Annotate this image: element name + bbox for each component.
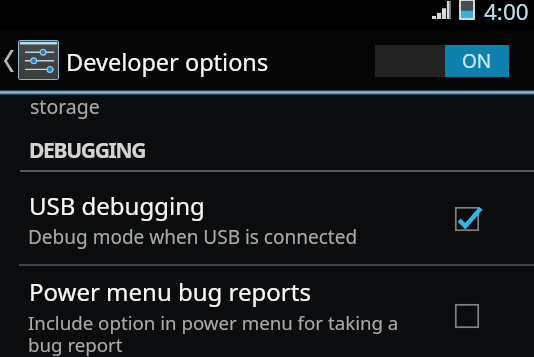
button[interactable]: storage: [0, 94, 534, 120]
button[interactable]: Navigate up: [0, 31, 59, 92]
staticText: DEBUGGING: [29, 136, 146, 165]
button[interactable]: Disabled, checkbox unchecked: [455, 304, 479, 328]
staticText: USB debugging: [29, 189, 205, 222]
button[interactable]: Developer options on: [375, 45, 509, 77]
staticText: Debug mode when USB is connected: [28, 224, 358, 250]
staticText: Power menu bug reports: [29, 275, 311, 308]
staticText: storage: [30, 93, 100, 119]
staticText: Developer options: [66, 46, 269, 78]
staticText: Include option in power menu for taking …: [28, 310, 399, 357]
button[interactable]: USB debugging: [0, 172, 534, 264]
staticText: 4:00: [484, 0, 529, 27]
button[interactable]: Enabled, checkbox checked: [455, 207, 479, 231]
staticText: ON: [462, 48, 492, 74]
button[interactable]: Power menu bug reports: [0, 266, 534, 357]
